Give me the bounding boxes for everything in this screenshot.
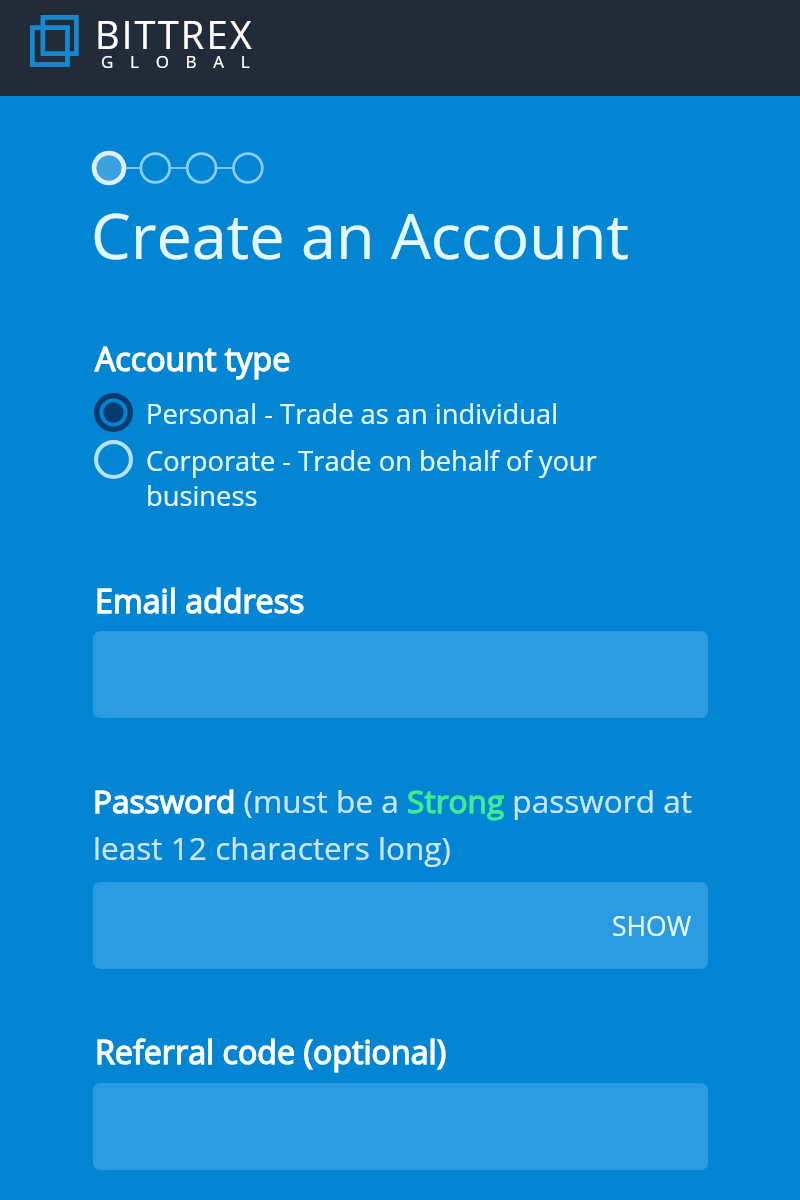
staticText: Corporate - Trade on behalf of your busi… xyxy=(146,442,708,514)
button[interactable]: Bittrex Global home xyxy=(22,6,272,86)
staticText: Referral code (optional) xyxy=(95,1030,447,1074)
button[interactable]: Corporate - Trade on behalf of your busi… xyxy=(94,440,710,512)
staticText: Account type xyxy=(95,337,291,381)
staticText: Create an Account xyxy=(91,192,629,278)
button[interactable]: Step 1 of 4 xyxy=(93,151,267,185)
staticText: GLOBAL xyxy=(101,50,267,73)
staticText: Email address xyxy=(95,579,305,623)
staticText: BITTREX xyxy=(95,8,254,60)
other: Bittrex Global logo xyxy=(30,15,82,68)
staticText: Password (must be a Strong password at l… xyxy=(93,779,708,869)
button[interactable]: SHOW xyxy=(93,882,708,969)
staticText: Personal - Trade as an individual xyxy=(146,395,559,432)
staticText: SHOW xyxy=(612,908,692,944)
button[interactable]: Personal - Trade as an individual xyxy=(94,393,710,432)
button[interactable]: SHOW xyxy=(592,882,708,969)
